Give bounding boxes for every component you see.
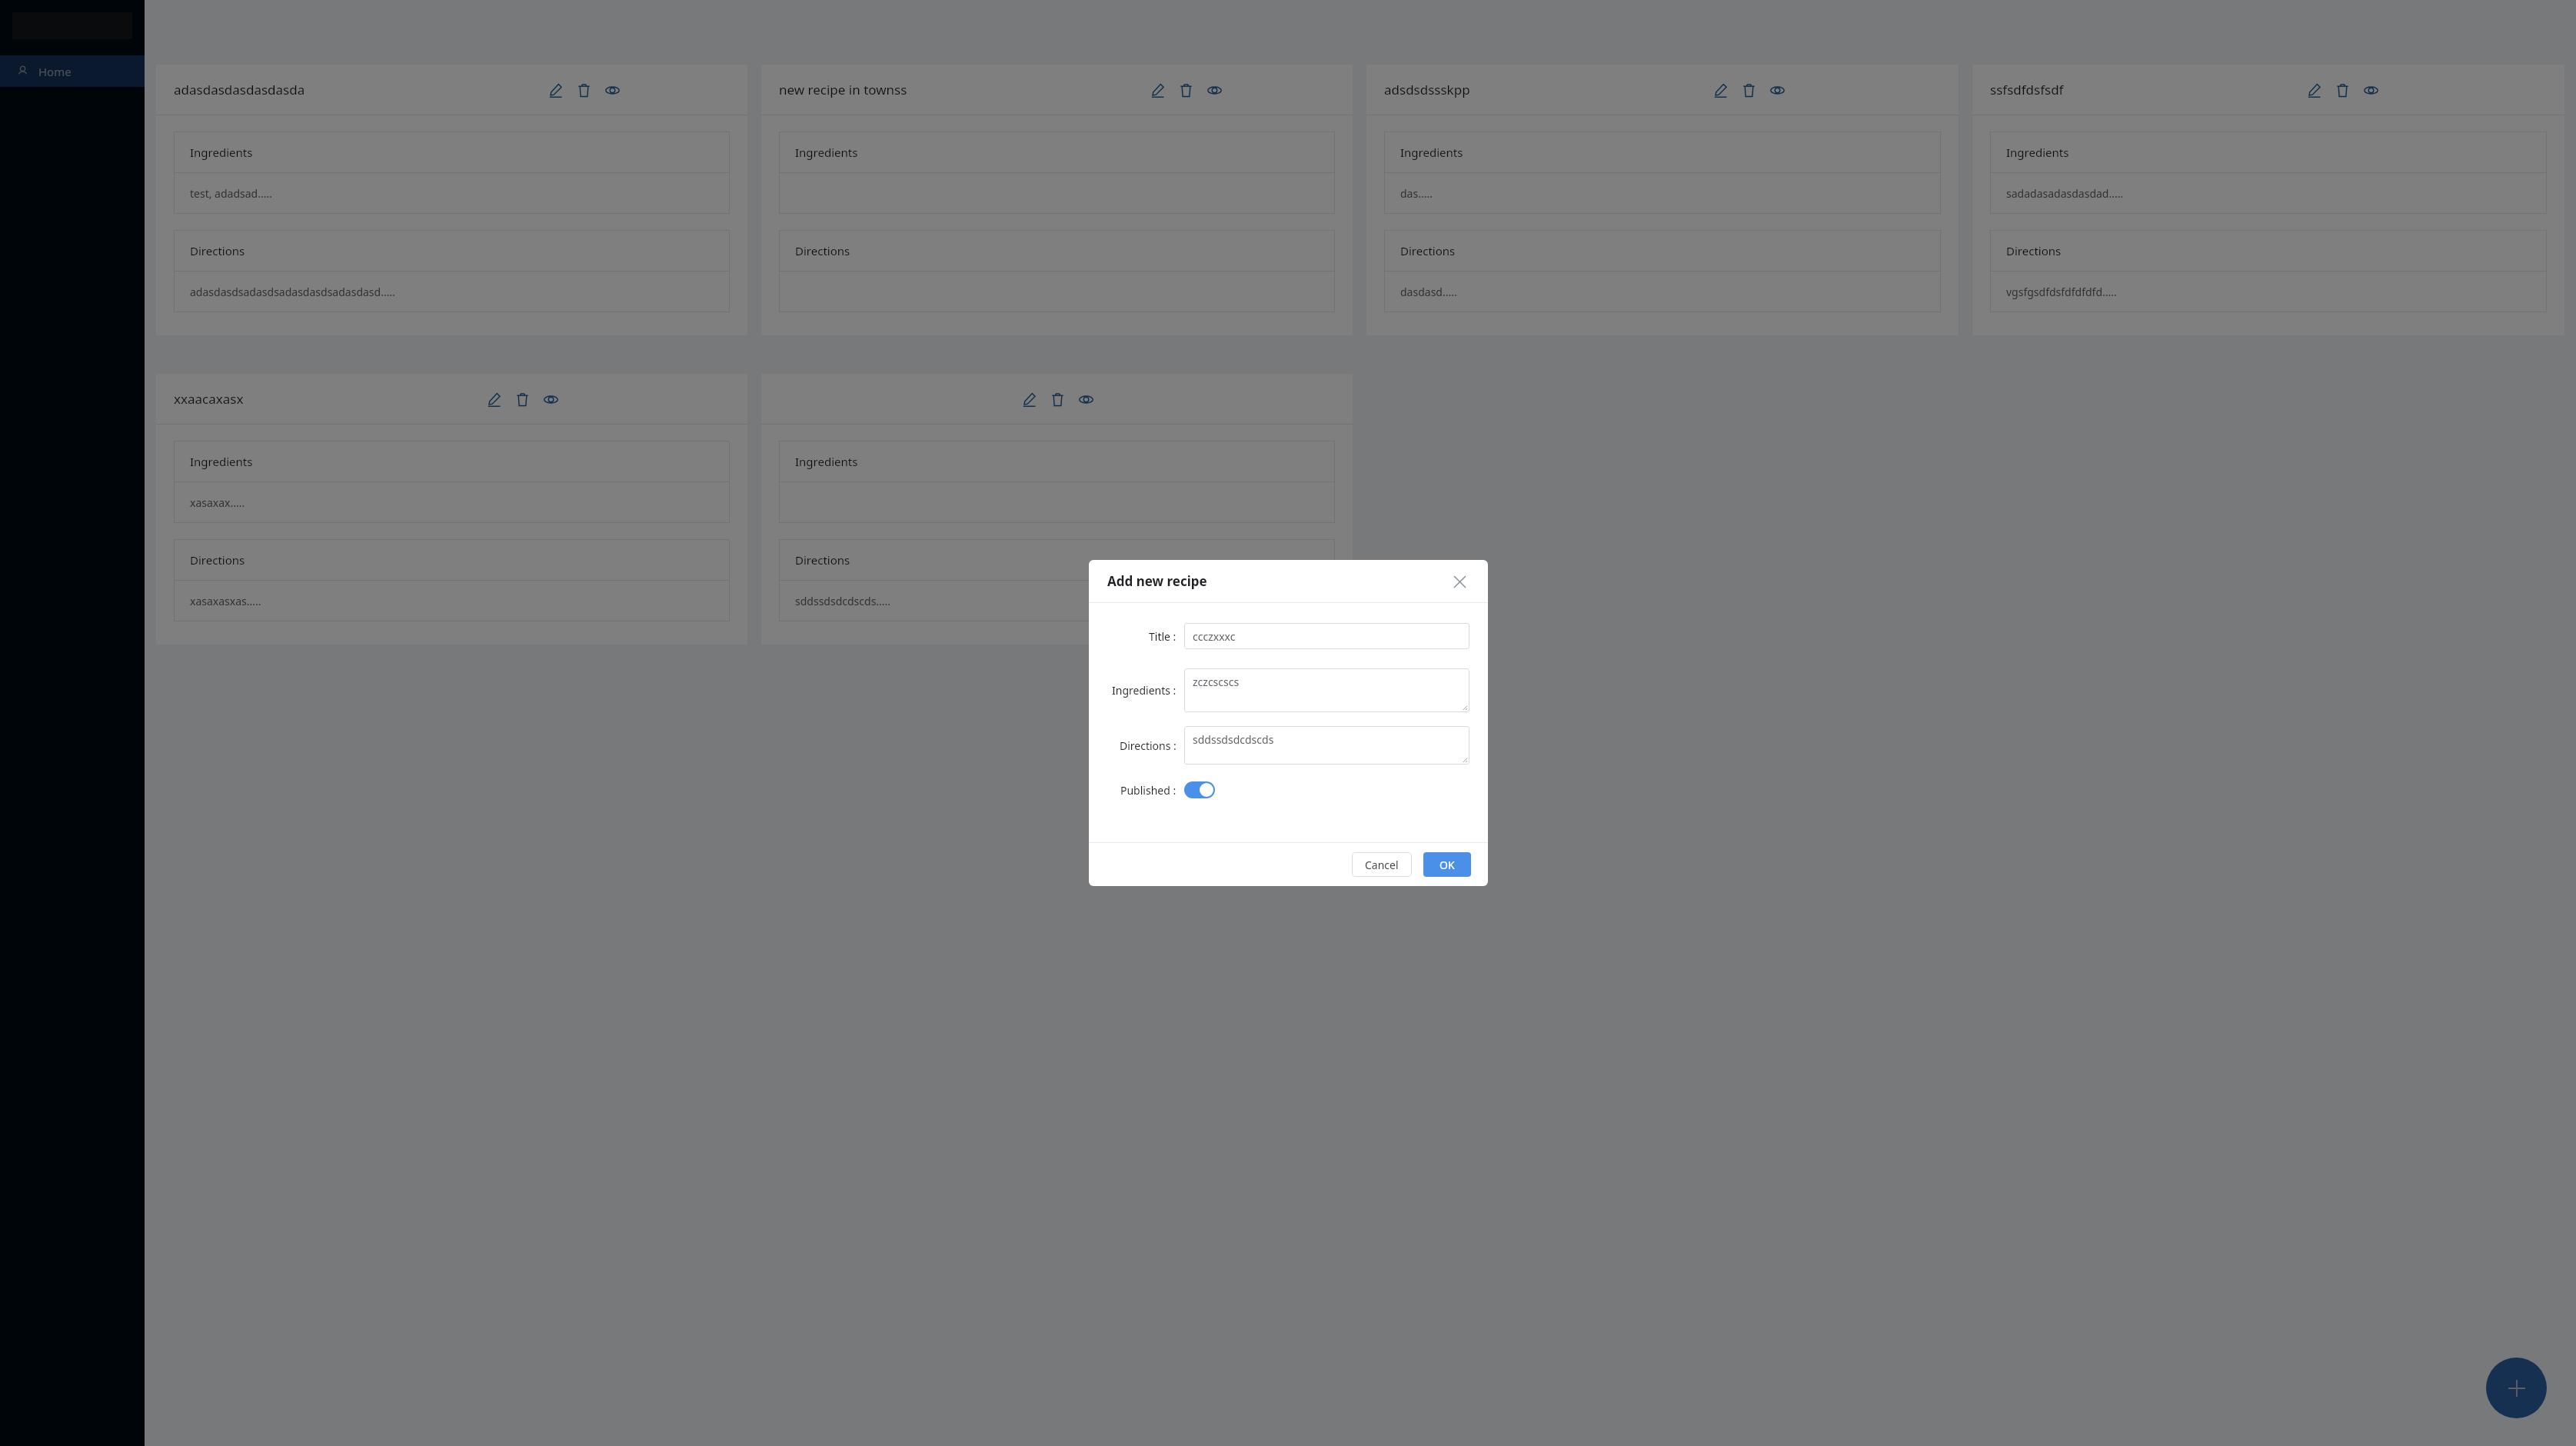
button[interactable]: Edit [761, 374, 1353, 645]
button[interactable]: Directions : [1184, 726, 1469, 765]
button[interactable]: View [541, 390, 560, 408]
staticText: Directions [190, 552, 245, 568]
staticText: ssfsdfdsfsdf [1990, 81, 2064, 98]
staticText: Ingredients [190, 454, 253, 469]
button[interactable]: Delete [2333, 81, 2351, 99]
staticText: Directions [795, 552, 850, 568]
staticText: Home [38, 64, 72, 79]
button[interactable]: Edit [2305, 81, 2323, 99]
button[interactable]: Edit [484, 390, 503, 408]
button[interactable]: Title : [1184, 623, 1469, 649]
button[interactable]: xxaacaxasx [156, 374, 747, 645]
button[interactable]: Published toggle [1184, 781, 1215, 798]
staticText: xasaxax..... [190, 495, 245, 510]
button[interactable]: View [603, 81, 621, 99]
staticText: adasdasdsadasdsadasdasdsadasdasd..... [190, 285, 395, 299]
staticText: Title : [1149, 629, 1177, 644]
staticText: Published : [1120, 783, 1177, 798]
staticText: Ingredients : [1112, 683, 1177, 698]
staticText: sddssdsdcdscds..... [795, 594, 891, 608]
staticText: Directions [1400, 243, 1456, 258]
button[interactable]: new recipe in townss [761, 65, 1353, 335]
staticText: Ingredients [190, 145, 253, 160]
button[interactable]: Edit [546, 81, 564, 99]
button[interactable]: Delete [513, 390, 531, 408]
button[interactable]: Delete [1739, 81, 1758, 99]
button[interactable]: Ingredients : [1184, 668, 1469, 712]
staticText: new recipe in townss [779, 81, 907, 98]
button[interactable]: Edit [1020, 390, 1038, 408]
staticText: vgsfgsdfdsfdfdfdfd..... [2006, 285, 2117, 299]
staticText: Ingredients [795, 454, 858, 469]
button[interactable]: Delete [1048, 390, 1067, 408]
staticText: dasdasd..... [1400, 285, 1457, 299]
staticText: Directions [2006, 243, 2062, 258]
button[interactable]: Add recipe [2486, 1358, 2547, 1418]
staticText: Directions [190, 243, 245, 258]
staticText: sddssdsdcdscds [1193, 732, 1274, 747]
button[interactable]: Home [0, 55, 145, 87]
staticText: Cancel [1365, 858, 1399, 872]
staticText: ccczxxxc [1193, 629, 1236, 644]
button[interactable]: Edit [1711, 81, 1729, 99]
button[interactable]: Edit [1148, 81, 1167, 99]
staticText: Add new recipe [1107, 572, 1207, 590]
button[interactable]: View [2361, 81, 2380, 99]
staticText: Directions : [1120, 738, 1177, 753]
staticText: xasaxasxas..... [190, 594, 261, 608]
staticText: Ingredients [2006, 145, 2069, 160]
button[interactable]: OK [1423, 852, 1471, 877]
button[interactable]: Cancel [1352, 852, 1412, 877]
button[interactable]: Close [1449, 571, 1469, 591]
button[interactable]: adsdsdssskpp [1366, 65, 1959, 335]
staticText: adasdasdasdasdasda [174, 81, 305, 98]
button[interactable]: View [1077, 390, 1095, 408]
staticText: Ingredients [795, 145, 858, 160]
staticText: zczcscscs [1193, 675, 1240, 689]
button[interactable]: Delete [1177, 81, 1195, 99]
button[interactable]: ssfsdfdsfsdf [1972, 65, 2564, 335]
button[interactable]: Delete [574, 81, 593, 99]
staticText: Directions [795, 243, 850, 258]
staticText: OK [1439, 858, 1455, 872]
staticText: xxaacaxasx [174, 390, 244, 408]
staticText: sadadasadasdasdad..... [2006, 186, 2124, 201]
staticText: test, adadsad..... [190, 186, 272, 201]
staticText: adsdsdssskpp [1384, 81, 1470, 98]
staticText: Ingredients [1400, 145, 1463, 160]
button[interactable]: adasdasdasdasdasda [156, 65, 747, 335]
button[interactable]: View [1768, 81, 1786, 99]
button[interactable]: View [1205, 81, 1223, 99]
staticText: das..... [1400, 186, 1433, 201]
